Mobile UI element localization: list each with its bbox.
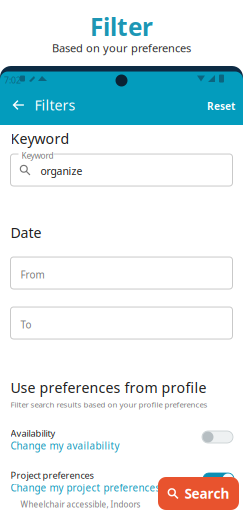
- staticText: Keyword: [21, 150, 53, 161]
- staticText: Project preferences: [10, 469, 93, 481]
- button[interactable]: Reset: [204, 95, 238, 117]
- staticText: Wheelchair accessible, Indoors: [20, 499, 140, 510]
- staticText: Filter search results based on your prof…: [10, 399, 207, 410]
- staticText: From: [20, 268, 44, 281]
- staticText: Based on your preferences: [52, 40, 191, 56]
- button[interactable]: Back: [7, 93, 29, 117]
- staticText: Search: [184, 484, 229, 503]
- button[interactable]: Change my availability: [10, 439, 119, 452]
- staticText: Use preferences from profile: [10, 378, 206, 397]
- staticText: Filters: [34, 95, 75, 115]
- button[interactable]: Search: [158, 477, 239, 510]
- staticText: Availability: [10, 427, 55, 439]
- staticText: Date: [10, 223, 41, 242]
- staticText: Filter: [90, 10, 153, 43]
- staticText: Reset: [207, 99, 235, 113]
- staticText: To: [20, 318, 31, 331]
- button[interactable]: Project preferences toggle: [203, 473, 234, 485]
- staticText: Change my project preferences: [10, 481, 160, 494]
- button[interactable]: Change my project preferences: [10, 481, 160, 494]
- staticText: organize: [40, 164, 82, 178]
- staticText: 7:02: [4, 74, 21, 86]
- staticText: Change my availability: [10, 439, 119, 452]
- staticText: Keyword: [10, 129, 69, 148]
- button[interactable]: Availability toggle: [202, 431, 233, 443]
